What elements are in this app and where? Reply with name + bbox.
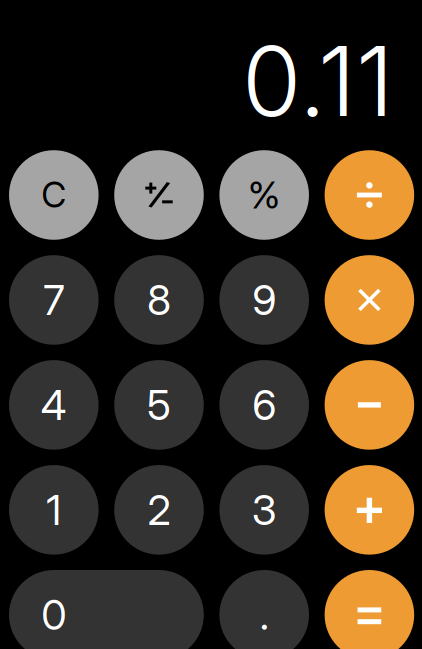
- staticText: 7: [43, 275, 64, 325]
- staticText: C: [41, 174, 66, 216]
- button[interactable]: Four: [9, 360, 99, 450]
- staticText: 4: [41, 380, 67, 430]
- staticText: %: [248, 172, 281, 218]
- button[interactable]: Plus: [325, 465, 414, 555]
- button[interactable]: Nine: [219, 255, 309, 345]
- button[interactable]: Plus minus: [114, 150, 204, 240]
- button[interactable]: One: [9, 465, 99, 555]
- staticText: 9: [252, 275, 276, 325]
- button[interactable]: Minus: [325, 360, 414, 450]
- staticText: 0: [41, 590, 66, 640]
- button[interactable]: Six: [219, 360, 309, 450]
- staticText: 5: [147, 380, 171, 430]
- button[interactable]: Zero: [9, 570, 204, 649]
- button[interactable]: Decimal point: [219, 570, 309, 649]
- staticText: .: [260, 590, 269, 640]
- button[interactable]: Clear: [9, 150, 99, 240]
- button[interactable]: Eight: [114, 255, 204, 345]
- staticText: 8: [147, 275, 171, 325]
- button[interactable]: Multiply: [325, 255, 414, 345]
- button[interactable]: Equals: [325, 570, 414, 649]
- button[interactable]: Seven: [9, 255, 99, 345]
- staticText: 3: [252, 485, 277, 535]
- staticText: 2: [147, 485, 170, 535]
- button[interactable]: Percent: [219, 150, 309, 240]
- button[interactable]: Divide: [325, 150, 414, 240]
- button[interactable]: Three: [219, 465, 309, 555]
- button[interactable]: Five: [114, 360, 204, 450]
- staticText: 6: [252, 380, 276, 430]
- staticText: 1: [46, 485, 61, 535]
- button[interactable]: Two: [114, 465, 204, 555]
- staticText: 0.11: [242, 23, 394, 139]
